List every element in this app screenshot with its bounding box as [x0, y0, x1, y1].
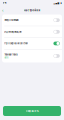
staticText: Тёмная тема	[4, 53, 17, 56]
staticText: Настройки	[23, 9, 40, 12]
staticText: ▂▄▆ ▮	[53, 2, 61, 4]
staticText: 9:41	[2, 2, 6, 4]
button[interactable]: Идентификация	[2, 26, 62, 37]
staticText: ‹	[2, 8, 4, 13]
button[interactable]: Тёмная тема	[2, 49, 62, 62]
staticText: Проверка новостей	[4, 42, 27, 45]
staticText: Идентификация	[4, 30, 21, 33]
button[interactable]: Сохранить	[3, 106, 61, 116]
button[interactable]: Проверка новостей	[2, 38, 62, 49]
button[interactable]: Уведомления	[2, 14, 62, 26]
button[interactable]: Back	[1, 7, 5, 13]
staticText: Сохранить	[25, 109, 38, 113]
staticText: Уведомления	[4, 19, 18, 22]
staticText: Авто	[4, 56, 8, 59]
